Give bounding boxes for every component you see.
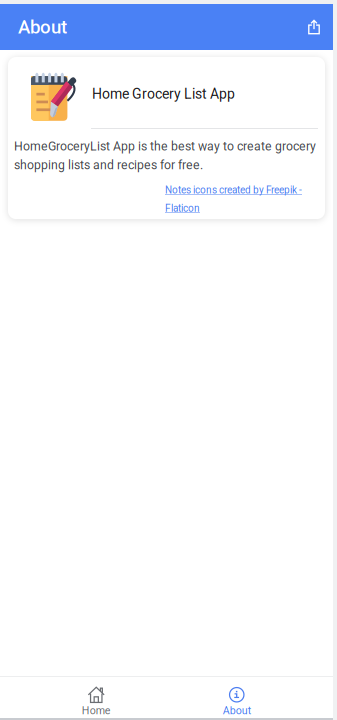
staticText: Notes icons created by Freepik - Flatico… [165, 184, 302, 214]
button[interactable]: About [166, 672, 307, 720]
button[interactable]: Share [297, 7, 331, 47]
staticText: Home [82, 704, 111, 717]
staticText: About [18, 16, 67, 38]
button[interactable]: Notes icons created by Freepik - Flatico… [165, 184, 313, 214]
staticText: About [223, 704, 251, 717]
staticText: Home Grocery List App [92, 86, 235, 102]
staticText: HomeGroceryList App is the best way to c… [14, 139, 316, 172]
button[interactable]: Home [26, 672, 166, 720]
